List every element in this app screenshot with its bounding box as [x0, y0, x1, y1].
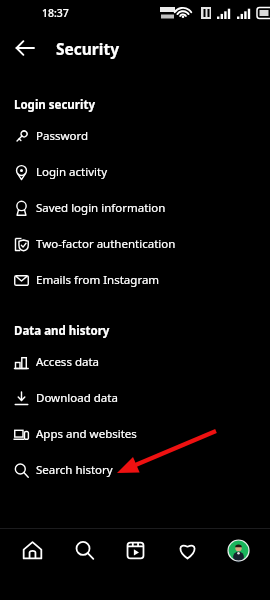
staticText: Saved login information	[36, 200, 166, 216]
button[interactable]: Access data	[0, 344, 270, 380]
staticText: Data and history	[14, 323, 110, 339]
button[interactable]: Back	[10, 33, 40, 63]
button[interactable]: Home	[12, 530, 52, 570]
staticText: Password	[36, 128, 89, 144]
button[interactable]: Activity	[167, 530, 207, 570]
button[interactable]: Reels	[115, 530, 155, 570]
button[interactable]: Login activity	[0, 154, 270, 190]
button[interactable]: Download data	[0, 380, 270, 416]
button[interactable]: Profile	[218, 530, 258, 570]
button[interactable]: Emails from Instagram	[0, 262, 270, 298]
staticText: 18:37	[42, 6, 69, 20]
staticText: Emails from Instagram	[36, 272, 160, 288]
staticText: Search history	[36, 462, 113, 478]
staticText: Access data	[36, 354, 100, 370]
button[interactable]: Search	[64, 530, 104, 570]
button[interactable]: Apps and websites	[0, 416, 270, 452]
staticText: Download data	[36, 390, 118, 406]
staticText: Apps and websites	[36, 426, 137, 442]
button[interactable]: Two-factor authentication	[0, 226, 270, 262]
staticText: Two-factor authentication	[36, 236, 176, 252]
staticText: Login security	[14, 97, 95, 113]
staticText: Login activity	[36, 164, 108, 180]
button[interactable]: Password	[0, 118, 270, 154]
staticText: Security	[56, 38, 120, 59]
button[interactable]: Saved login information	[0, 190, 270, 226]
button[interactable]: Search history	[0, 452, 270, 488]
